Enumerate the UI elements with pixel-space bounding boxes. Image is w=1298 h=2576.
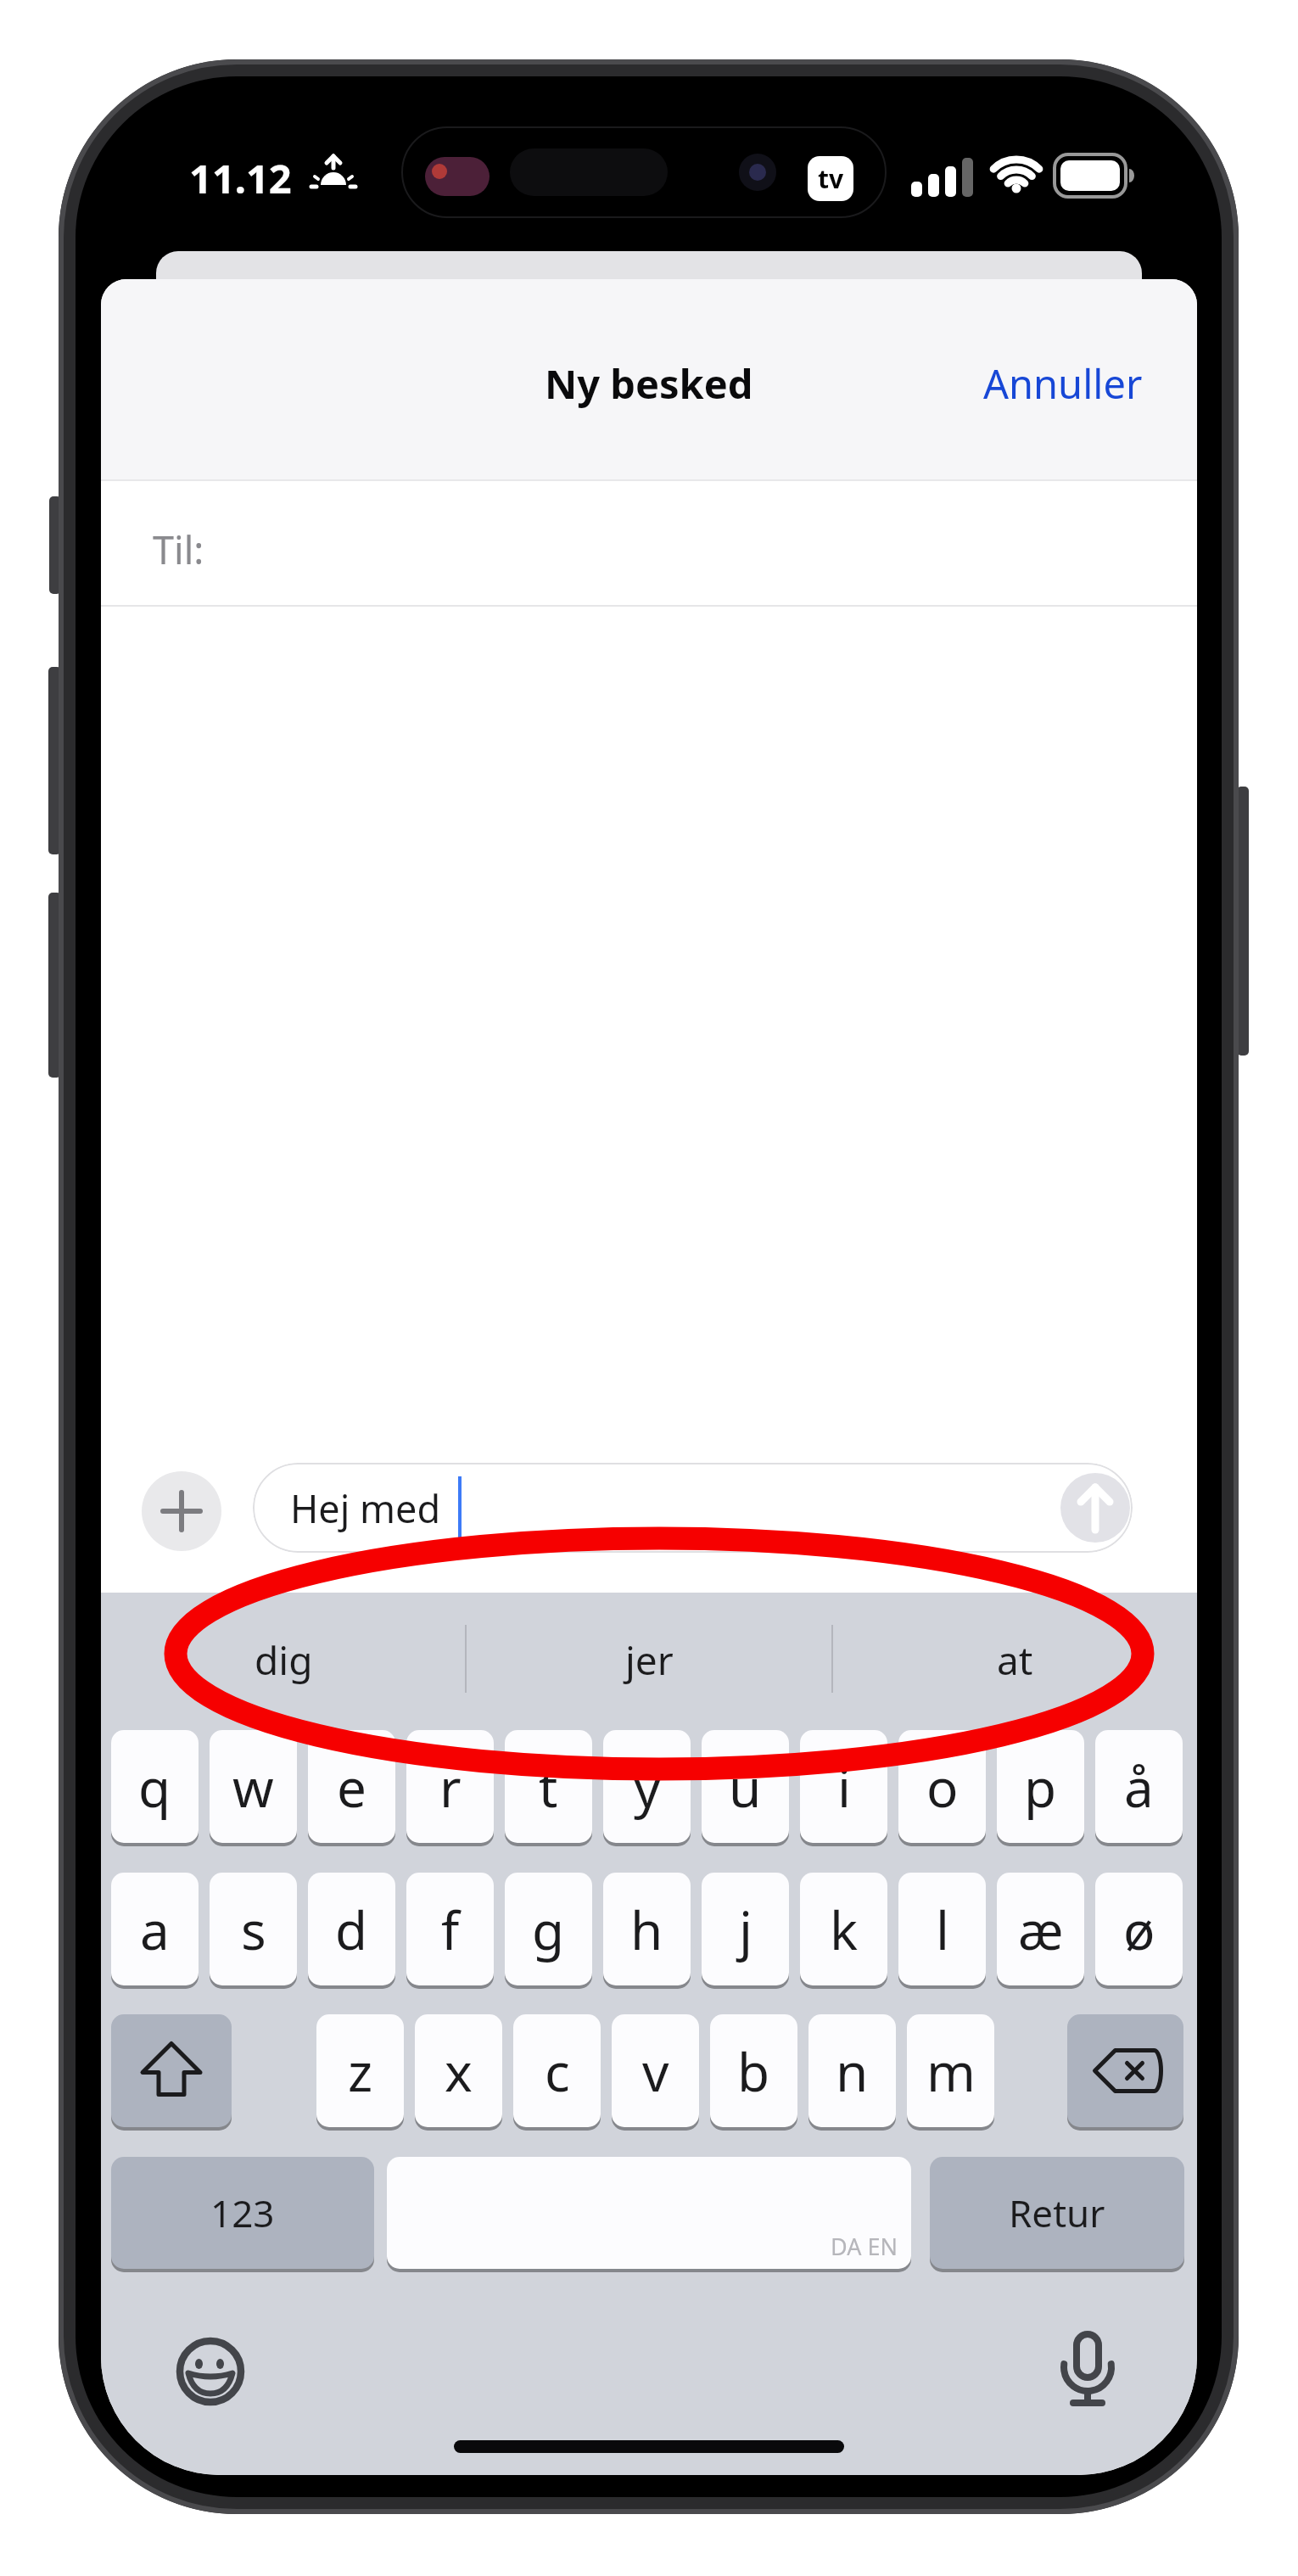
button[interactable]: w [210,1730,297,1843]
button[interactable]: Retur [930,2157,1184,2269]
staticText: DA EN [831,2231,898,2262]
staticText: dig [255,1633,313,1687]
button[interactable]: 123 [111,2157,374,2269]
staticText: Retur [1009,2187,1105,2238]
staticText: i [837,1751,851,1823]
button[interactable]: z [316,2014,404,2127]
button[interactable]: f [406,1873,494,1985]
button[interactable]: c [513,2014,601,2127]
button[interactable]: DA EN [387,2157,911,2269]
staticText: t [539,1751,558,1823]
staticText: Ny besked [545,356,753,411]
button[interactable] [173,2334,248,2409]
staticText: q [138,1751,171,1823]
staticText: tv [818,161,844,196]
button[interactable]: q [111,1730,199,1843]
button[interactable]: dig [101,1593,466,1727]
staticText: r [439,1751,462,1823]
staticText: at [997,1633,1033,1687]
staticText: d [335,1894,368,1965]
staticText: æ [1018,1894,1064,1965]
button[interactable]: at [832,1593,1197,1727]
staticText: k [830,1894,859,1965]
button[interactable]: l [898,1873,986,1985]
button[interactable]: n [808,2014,896,2127]
button[interactable]: Hej med [253,1463,1133,1553]
button[interactable]: o [898,1730,986,1843]
staticText: p [1024,1751,1057,1823]
staticText: u [729,1751,762,1823]
staticText: l [936,1894,949,1965]
button[interactable]: å [1095,1730,1183,1843]
button[interactable] [1054,2328,1122,2409]
button[interactable]: g [505,1873,592,1985]
staticText: x [445,2036,473,2107]
button[interactable]: p [997,1730,1084,1843]
button[interactable]: b [710,2014,797,2127]
staticText: s [241,1894,266,1965]
button[interactable] [1067,2014,1183,2127]
button[interactable]: j [702,1873,789,1985]
button[interactable]: ø [1095,1873,1183,1985]
button[interactable] [142,1471,221,1551]
staticText: Annuller [983,356,1143,411]
staticText: Til: [153,524,204,575]
button[interactable]: e [308,1730,395,1843]
staticText: n [836,2036,869,2107]
button[interactable]: h [603,1873,691,1985]
button[interactable]: jer [467,1593,831,1727]
staticText: 11.12 [189,151,292,205]
staticText: c [545,2036,570,2107]
staticText: e [337,1751,366,1823]
staticText: a [140,1894,170,1965]
staticText: z [348,2036,373,2107]
staticText: o [926,1751,959,1823]
staticText: w [232,1751,274,1823]
staticText: f [441,1894,460,1965]
staticText: Hej med [290,1482,441,1534]
button[interactable]: Annuller [983,356,1143,411]
staticText: m [926,2036,976,2107]
button[interactable]: k [800,1873,887,1985]
staticText: å [1124,1751,1154,1823]
staticText: jer [625,1633,674,1687]
staticText: v [642,2036,669,2107]
button[interactable]: u [702,1730,789,1843]
button[interactable]: m [907,2014,994,2127]
button[interactable]: a [111,1873,199,1985]
button[interactable]: d [308,1873,395,1985]
button[interactable]: s [210,1873,297,1985]
button[interactable]: t [505,1730,592,1843]
button[interactable]: v [612,2014,699,2127]
button[interactable]: r [406,1730,494,1843]
staticText: ø [1123,1894,1155,1965]
button[interactable]: x [415,2014,502,2127]
staticText: h [630,1894,663,1965]
button[interactable] [111,2014,232,2127]
button[interactable] [1060,1473,1130,1543]
staticText: 123 [210,2187,275,2238]
button[interactable]: Til: [101,481,1197,605]
button[interactable]: y [603,1730,691,1843]
staticText: b [737,2036,770,2107]
button[interactable]: æ [997,1873,1084,1985]
staticText: y [634,1751,661,1823]
staticText: g [532,1894,565,1965]
button[interactable]: i [800,1730,887,1843]
staticText: j [739,1894,753,1965]
